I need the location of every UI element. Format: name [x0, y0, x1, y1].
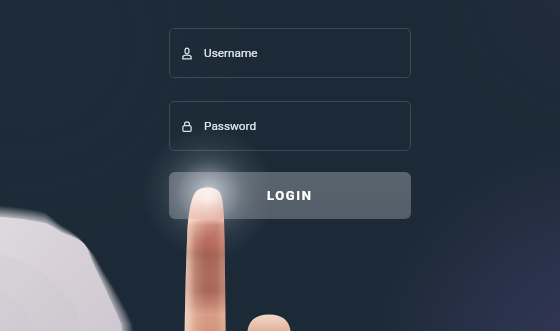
- staticText: LOGIN: [267, 188, 313, 203]
- staticText: Username: [204, 46, 258, 60]
- button[interactable]: LOGIN: [169, 172, 411, 219]
- button[interactable]: Password: [169, 101, 411, 151]
- staticText: Password: [204, 119, 257, 133]
- button[interactable]: Username: [169, 28, 411, 78]
